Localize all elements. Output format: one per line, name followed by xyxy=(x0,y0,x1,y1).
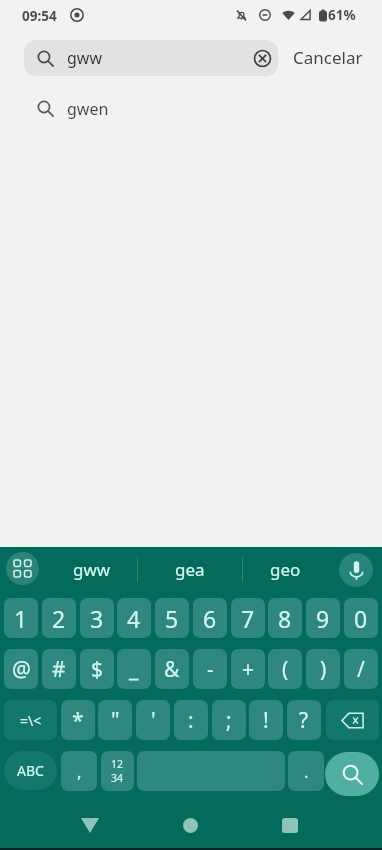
staticText: 5 xyxy=(165,603,179,634)
staticText: : xyxy=(188,706,194,735)
button[interactable]: Space xyxy=(137,751,285,791)
button[interactable]: 5 xyxy=(155,598,189,638)
staticText: 09:54 xyxy=(22,7,57,25)
button[interactable]: & xyxy=(155,649,189,689)
staticText: 12 xyxy=(111,757,124,771)
staticText: 34 xyxy=(111,771,124,785)
staticText: geo xyxy=(270,558,301,581)
staticText: gea xyxy=(175,558,205,581)
button[interactable]: - xyxy=(193,649,227,689)
staticText: ) xyxy=(320,655,327,684)
button[interactable]: Voice input xyxy=(339,553,373,587)
button[interactable]: 0 xyxy=(344,598,378,638)
button[interactable]: gea xyxy=(138,547,242,592)
button[interactable]: 7 xyxy=(231,598,265,638)
staticText: _ xyxy=(129,655,139,684)
staticText: @ xyxy=(12,655,31,684)
button[interactable]: Search xyxy=(325,752,379,796)
button[interactable]: Numbers xyxy=(101,751,134,791)
staticText: gww xyxy=(73,558,111,581)
staticText: 1 xyxy=(14,603,28,634)
button[interactable]: , xyxy=(61,751,97,791)
staticText: ABC xyxy=(17,761,44,780)
button[interactable]: Clear search xyxy=(247,43,277,73)
staticText: $ xyxy=(91,655,104,684)
button[interactable]: gww xyxy=(47,547,137,592)
staticText: # xyxy=(52,655,66,684)
button[interactable]: 3 xyxy=(80,598,114,638)
button[interactable]: ! xyxy=(249,700,283,740)
button[interactable]: 8 xyxy=(268,598,302,638)
button[interactable]: + xyxy=(231,649,265,689)
staticText: 61% xyxy=(328,6,356,24)
staticText: , xyxy=(77,760,82,783)
staticText: & xyxy=(164,655,180,684)
staticText: 6 xyxy=(203,603,217,634)
staticText: . xyxy=(304,760,309,783)
staticText: Cancelar xyxy=(293,46,363,69)
button[interactable]: Backspace xyxy=(326,700,379,740)
staticText: 8 xyxy=(278,603,292,634)
button[interactable]: gwen xyxy=(0,75,382,131)
button[interactable]: $ xyxy=(80,649,114,689)
button[interactable]: _ xyxy=(117,649,151,689)
staticText: 2 xyxy=(52,603,66,634)
button[interactable]: 2 xyxy=(42,598,76,638)
button[interactable]: gww xyxy=(24,40,278,76)
staticText: ' xyxy=(151,706,156,735)
button[interactable]: =\< xyxy=(4,700,57,740)
button[interactable]: 9 xyxy=(306,598,340,638)
button[interactable]: ' xyxy=(136,700,170,740)
button[interactable]: # xyxy=(42,649,76,689)
button[interactable]: ) xyxy=(306,649,340,689)
button[interactable]: 4 xyxy=(117,598,151,638)
staticText: 7 xyxy=(241,603,255,634)
staticText: 3 xyxy=(90,603,104,634)
button[interactable]: Keyboard apps xyxy=(6,552,39,585)
staticText: + xyxy=(242,655,255,684)
button[interactable]: * xyxy=(61,700,95,740)
staticText: - xyxy=(207,655,214,684)
staticText: gwen xyxy=(67,98,109,120)
button[interactable]: ( xyxy=(268,649,302,689)
button[interactable]: : xyxy=(174,700,208,740)
button[interactable]: Recents xyxy=(266,801,314,849)
staticText: " xyxy=(111,706,120,735)
button[interactable]: geo xyxy=(243,547,328,592)
button[interactable]: / xyxy=(344,649,378,689)
button[interactable]: ABC xyxy=(4,751,57,790)
button[interactable]: Back xyxy=(66,801,114,849)
button[interactable]: . xyxy=(288,751,324,791)
staticText: * xyxy=(72,706,84,735)
staticText: ? xyxy=(299,706,309,735)
staticText: / xyxy=(357,655,365,684)
button[interactable]: ? xyxy=(287,700,321,740)
staticText: 9 xyxy=(316,603,330,634)
staticText: 4 xyxy=(127,603,141,634)
staticText: ; xyxy=(226,706,232,735)
button[interactable]: @ xyxy=(4,649,38,689)
button[interactable]: ; xyxy=(212,700,246,740)
staticText: =\< xyxy=(20,711,42,730)
staticText: gww xyxy=(67,47,102,69)
staticText: ! xyxy=(263,706,269,735)
button[interactable]: 1 xyxy=(4,598,38,638)
staticText: 0 xyxy=(354,603,368,634)
button[interactable]: 6 xyxy=(193,598,227,638)
button[interactable]: " xyxy=(98,700,132,740)
button[interactable]: Home xyxy=(166,801,214,849)
button[interactable]: Cancelar xyxy=(291,38,365,77)
staticText: ( xyxy=(282,655,289,684)
